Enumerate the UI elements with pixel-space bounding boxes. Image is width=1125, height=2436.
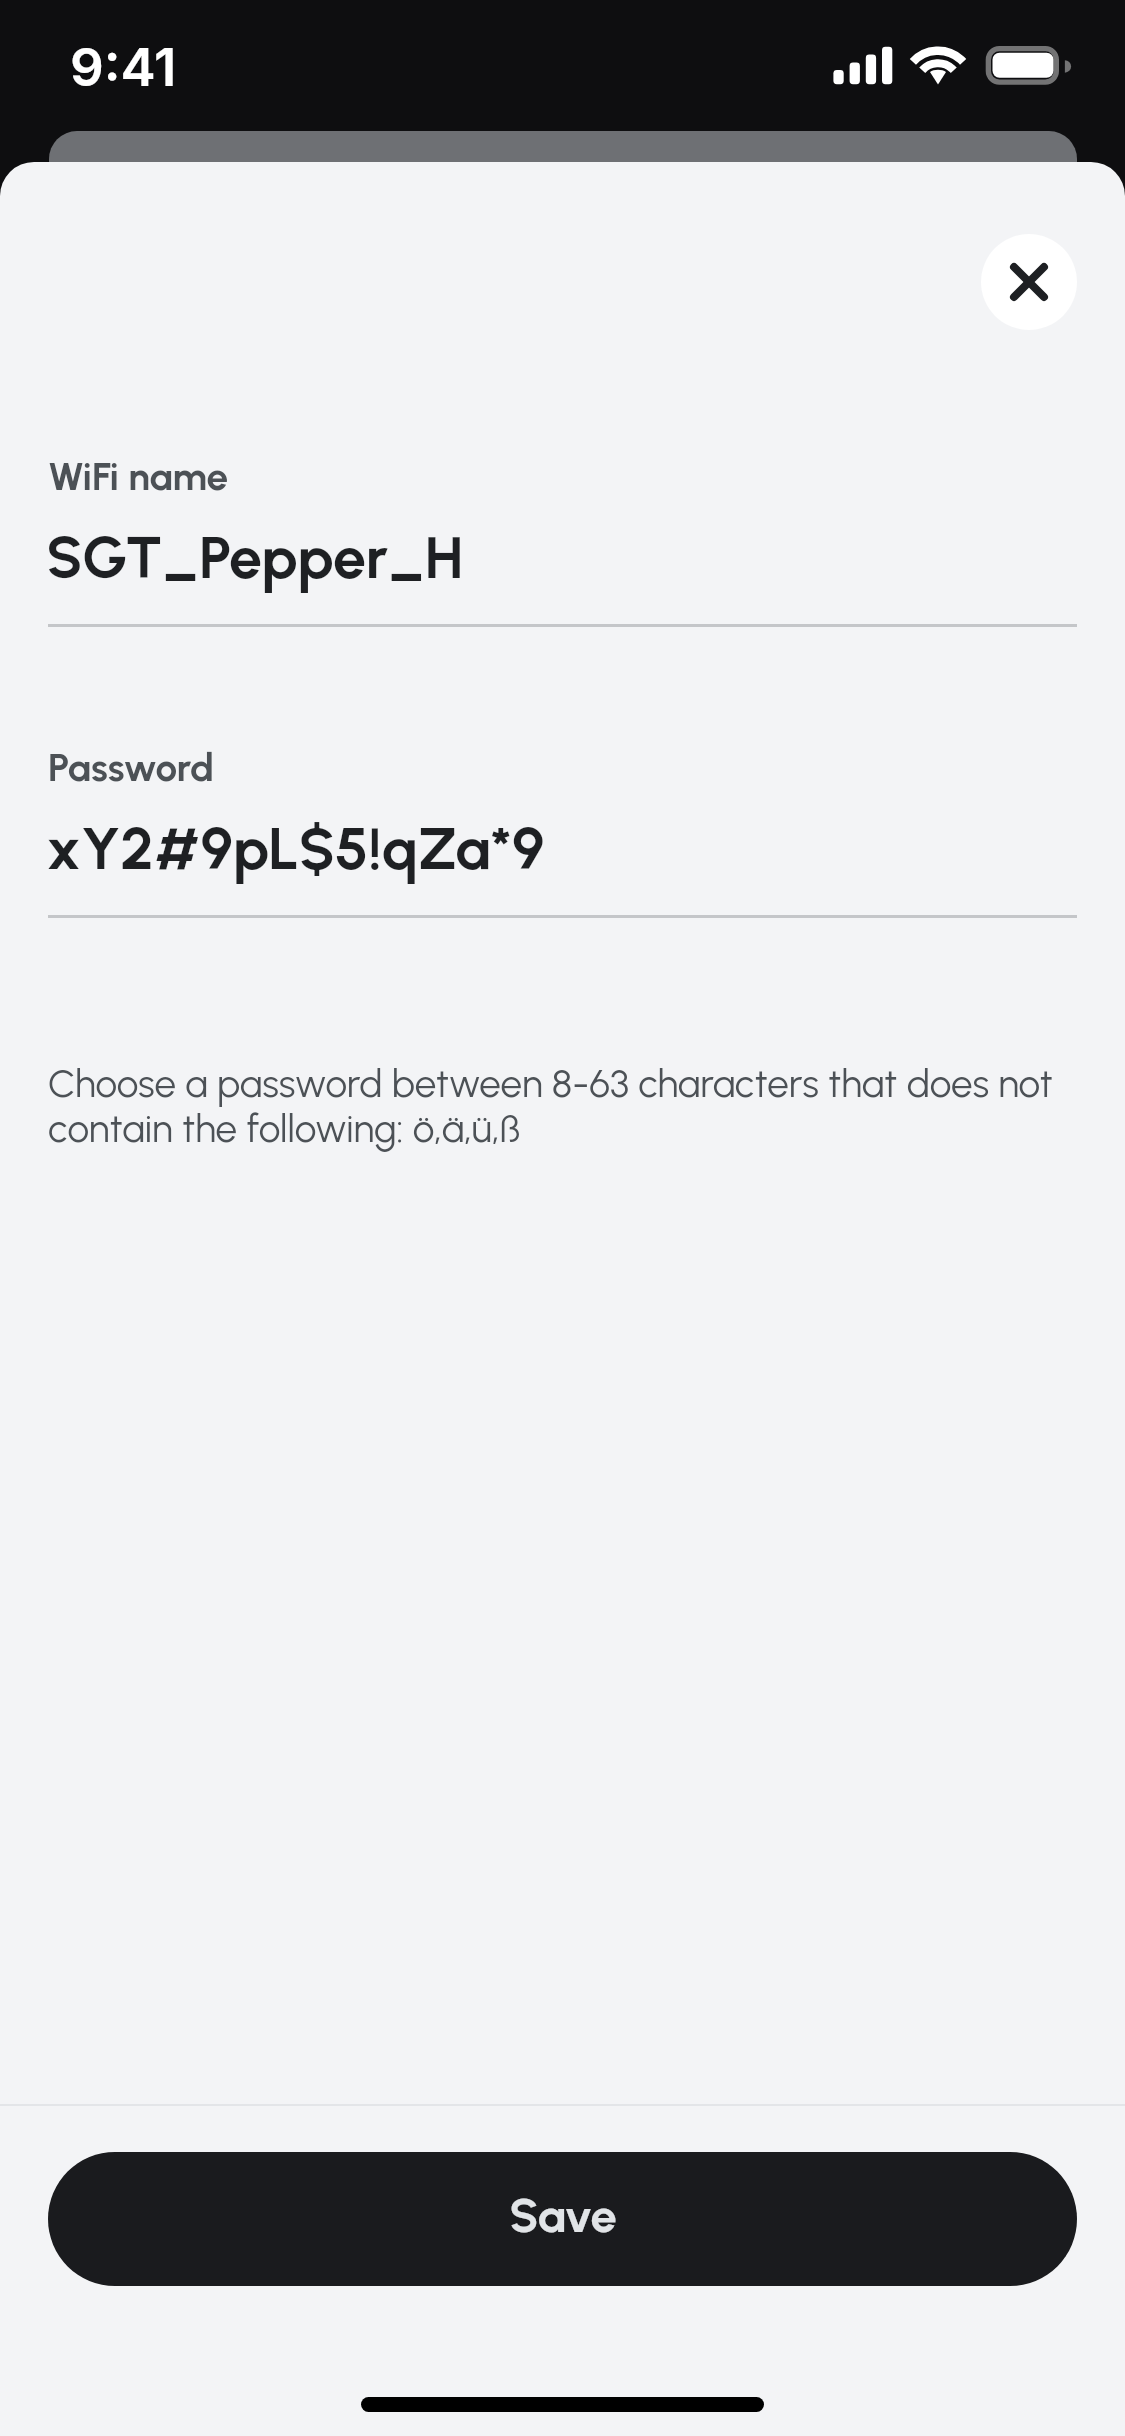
button[interactable]: Close [981, 234, 1077, 330]
button[interactable] [48, 438, 1077, 627]
staticText: Choose a password between 8-63 character… [48, 1060, 1078, 1152]
staticText: Save [509, 2187, 617, 2243]
staticText: xY2#9pL$5!qZa*9 [46, 813, 545, 884]
button[interactable]: Save [48, 2152, 1077, 2286]
staticText: 9:41 [70, 35, 177, 99]
button[interactable] [48, 729, 1077, 918]
staticText: SGT_Pepper_H [46, 522, 464, 593]
staticText: WiFi name [48, 453, 229, 499]
staticText: Password [48, 744, 215, 790]
